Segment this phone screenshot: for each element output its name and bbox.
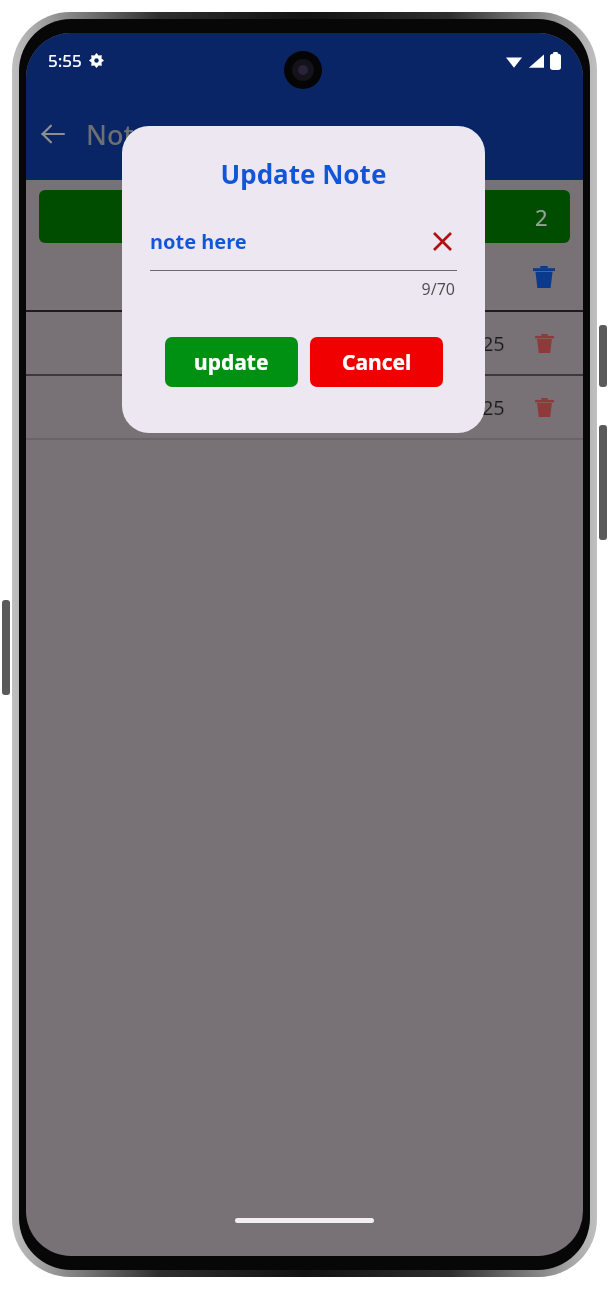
staticText: Update Note — [122, 156, 485, 191]
staticText: 9/70 — [122, 278, 455, 300]
other: Delete — [527, 260, 561, 294]
button[interactable]: Cancel — [310, 337, 443, 387]
staticText: note here — [150, 228, 247, 255]
staticText: update — [194, 348, 269, 377]
staticText: Cancel — [342, 348, 412, 377]
staticText: 2025 — [459, 394, 505, 421]
button[interactable]: Delete — [26, 243, 583, 310]
staticText: Notes — [86, 116, 163, 153]
button[interactable]: 2 — [39, 190, 570, 243]
button[interactable]: update — [165, 337, 298, 387]
staticText: 2 — [535, 202, 548, 232]
other: Delete — [527, 326, 561, 360]
button[interactable]: Back — [26, 107, 80, 161]
staticText: 2025 — [459, 330, 505, 357]
button[interactable]: 2025 — [26, 312, 583, 374]
other: Delete — [527, 390, 561, 424]
staticText: 5:55 — [48, 49, 82, 72]
button[interactable]: Clear text — [427, 226, 457, 256]
button[interactable]: 2025 — [26, 376, 583, 438]
